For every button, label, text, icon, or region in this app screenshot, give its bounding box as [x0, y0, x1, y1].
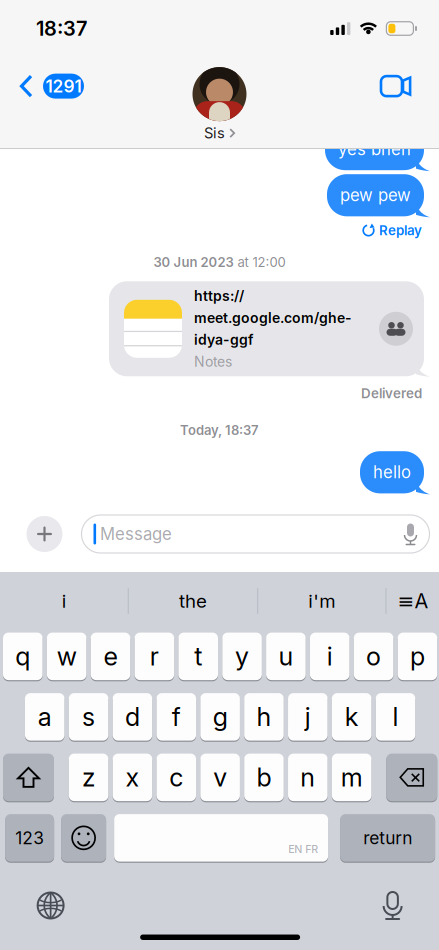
button[interactable]: space [114, 813, 328, 862]
button[interactable]: the [129, 572, 257, 630]
button[interactable]: m [332, 753, 371, 802]
staticText: r [150, 641, 159, 672]
button[interactable]: t [178, 632, 218, 681]
staticText: 30 Jun 2023 [153, 254, 233, 270]
button[interactable]: 123 [5, 813, 54, 862]
button[interactable]: return [340, 813, 435, 862]
button[interactable]: l [376, 692, 415, 741]
button[interactable]: Next keyboard [37, 891, 65, 919]
button[interactable]: b [244, 753, 284, 802]
staticText: u [278, 641, 293, 672]
button[interactable]: a [25, 692, 64, 741]
staticText: yes bhen [338, 139, 411, 159]
staticText: meet.google.com/ghe- [194, 309, 352, 326]
staticText: x [125, 762, 139, 793]
staticText: c [169, 762, 183, 793]
staticText: a [38, 701, 52, 732]
staticText: w [57, 641, 77, 672]
button[interactable]: Dictate [382, 890, 404, 920]
button[interactable]: Emoji [61, 813, 106, 862]
staticText: d [125, 701, 140, 732]
button[interactable]: y [222, 632, 262, 681]
staticText: i [62, 590, 67, 612]
staticText: p [410, 641, 425, 672]
button[interactable]: https:// [109, 281, 424, 376]
staticText: i [327, 641, 333, 672]
button[interactable]: q [3, 632, 43, 681]
button[interactable]: j [288, 692, 328, 741]
button[interactable]: k [332, 692, 371, 741]
staticText: f [172, 701, 181, 732]
staticText: g [213, 701, 228, 732]
staticText: j [305, 701, 311, 732]
button[interactable]: Add attachment [26, 516, 62, 552]
staticText: the [179, 590, 207, 612]
button[interactable]: r [135, 632, 174, 681]
button[interactable]: i'm [258, 572, 385, 630]
button[interactable]: Formatting options [387, 572, 439, 630]
staticText: https:// [194, 287, 244, 304]
button[interactable]: 1291 [0, 65, 92, 108]
staticText: Notes [194, 353, 232, 370]
staticText: h [256, 701, 271, 732]
staticText: Replay [379, 222, 422, 238]
button[interactable]: h [244, 692, 284, 741]
button[interactable]: p [398, 632, 437, 681]
staticText: 1291 [45, 76, 81, 97]
staticText: Delivered [361, 385, 422, 401]
staticText: 123 [15, 827, 44, 848]
button[interactable]: c [156, 753, 196, 802]
staticText: q [15, 641, 30, 672]
button[interactable]: u [266, 632, 306, 681]
staticText: y [235, 641, 249, 672]
staticText: idya-ggf [194, 331, 253, 348]
staticText: Sis [204, 124, 225, 142]
staticText: hello [373, 462, 411, 482]
staticText: m [341, 762, 363, 793]
staticText: v [213, 762, 227, 793]
button[interactable]: i [1, 572, 128, 630]
staticText: ≡A [398, 589, 429, 613]
button[interactable]: z [69, 753, 108, 802]
staticText: s [82, 701, 95, 732]
button[interactable]: x [113, 753, 152, 802]
staticText: b [256, 762, 271, 793]
staticText: 18:37 [36, 16, 87, 41]
staticText: e [103, 641, 117, 672]
button[interactable]: n [288, 753, 328, 802]
staticText: Message [100, 524, 172, 544]
staticText: EN FR [288, 843, 318, 856]
button[interactable]: d [113, 692, 152, 741]
staticText: k [345, 701, 359, 732]
button[interactable]: v [200, 753, 240, 802]
staticText: o [366, 641, 381, 672]
staticText: at 12:00 [237, 254, 285, 270]
button[interactable]: Shift [3, 753, 54, 802]
button[interactable]: FaceTime [367, 64, 439, 108]
button[interactable]: e [91, 632, 130, 681]
staticText: l [392, 701, 398, 732]
staticText: return [363, 827, 412, 848]
staticText: n [300, 762, 315, 793]
staticText: t [194, 641, 202, 672]
button[interactable]: g [200, 692, 240, 741]
button[interactable]: Delete [386, 753, 437, 802]
staticText: z [82, 762, 95, 793]
button[interactable]: i [310, 632, 350, 681]
button[interactable]: o [354, 632, 393, 681]
button[interactable]: f [156, 692, 196, 741]
staticText: pew pew [340, 185, 411, 205]
button[interactable]: w [47, 632, 86, 681]
staticText: i'm [308, 590, 335, 612]
button[interactable]: s [69, 692, 108, 741]
staticText: Today, 18:37 [180, 422, 259, 438]
